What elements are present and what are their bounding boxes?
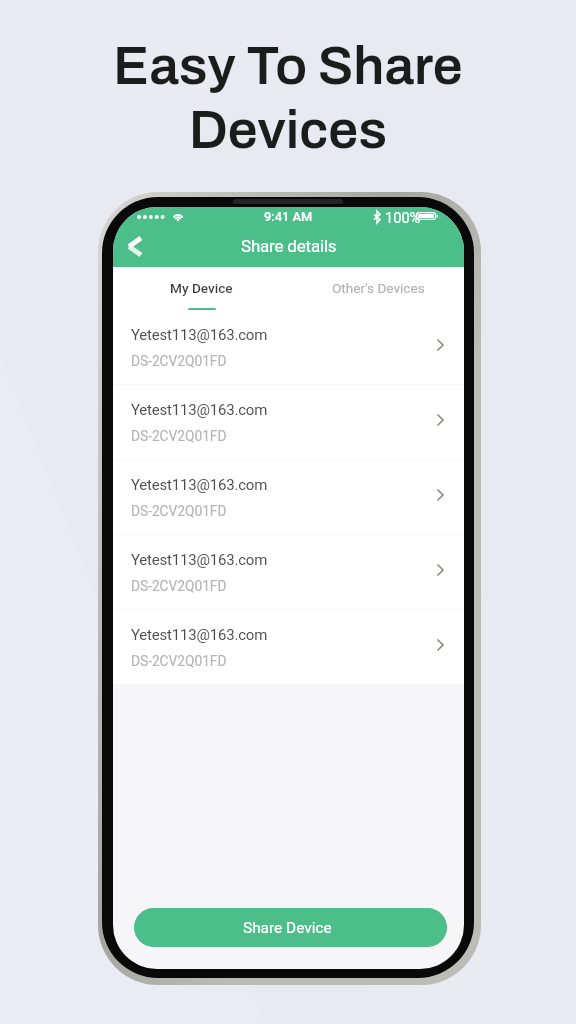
staticText: Other's Devices xyxy=(332,280,425,296)
button[interactable]: Yetest113@163.com xyxy=(113,460,464,534)
staticText: Share Device xyxy=(243,919,332,937)
staticText: My Device xyxy=(170,280,233,296)
button[interactable]: Yetest113@163.com xyxy=(113,535,464,609)
button[interactable]: Other's Devices xyxy=(308,267,448,310)
staticText: DS-2CV2Q01FD xyxy=(131,428,227,444)
staticText: DS-2CV2Q01FD xyxy=(131,653,227,669)
staticText: DS-2CV2Q01FD xyxy=(131,578,227,594)
button[interactable]: Yetest113@163.com xyxy=(113,310,464,384)
button[interactable]: Yetest113@163.com xyxy=(113,610,464,684)
staticText: Easy To Share Devices xyxy=(113,37,463,160)
staticText: Yetest113@163.com xyxy=(131,551,268,569)
button[interactable]: Back xyxy=(114,227,156,265)
staticText: Yetest113@163.com xyxy=(131,326,268,344)
staticText: DS-2CV2Q01FD xyxy=(131,503,227,519)
staticText: Yetest113@163.com xyxy=(131,476,268,494)
staticText: Share details xyxy=(241,236,337,256)
staticText: 9:41 AM xyxy=(264,209,313,224)
button[interactable]: My Device xyxy=(131,267,271,310)
staticText: DS-2CV2Q01FD xyxy=(131,353,227,369)
staticText: 100% xyxy=(385,209,421,226)
staticText: Yetest113@163.com xyxy=(131,626,268,644)
button[interactable]: Share Device xyxy=(134,908,447,947)
button[interactable]: Yetest113@163.com xyxy=(113,385,464,459)
staticText: Yetest113@163.com xyxy=(131,401,268,419)
